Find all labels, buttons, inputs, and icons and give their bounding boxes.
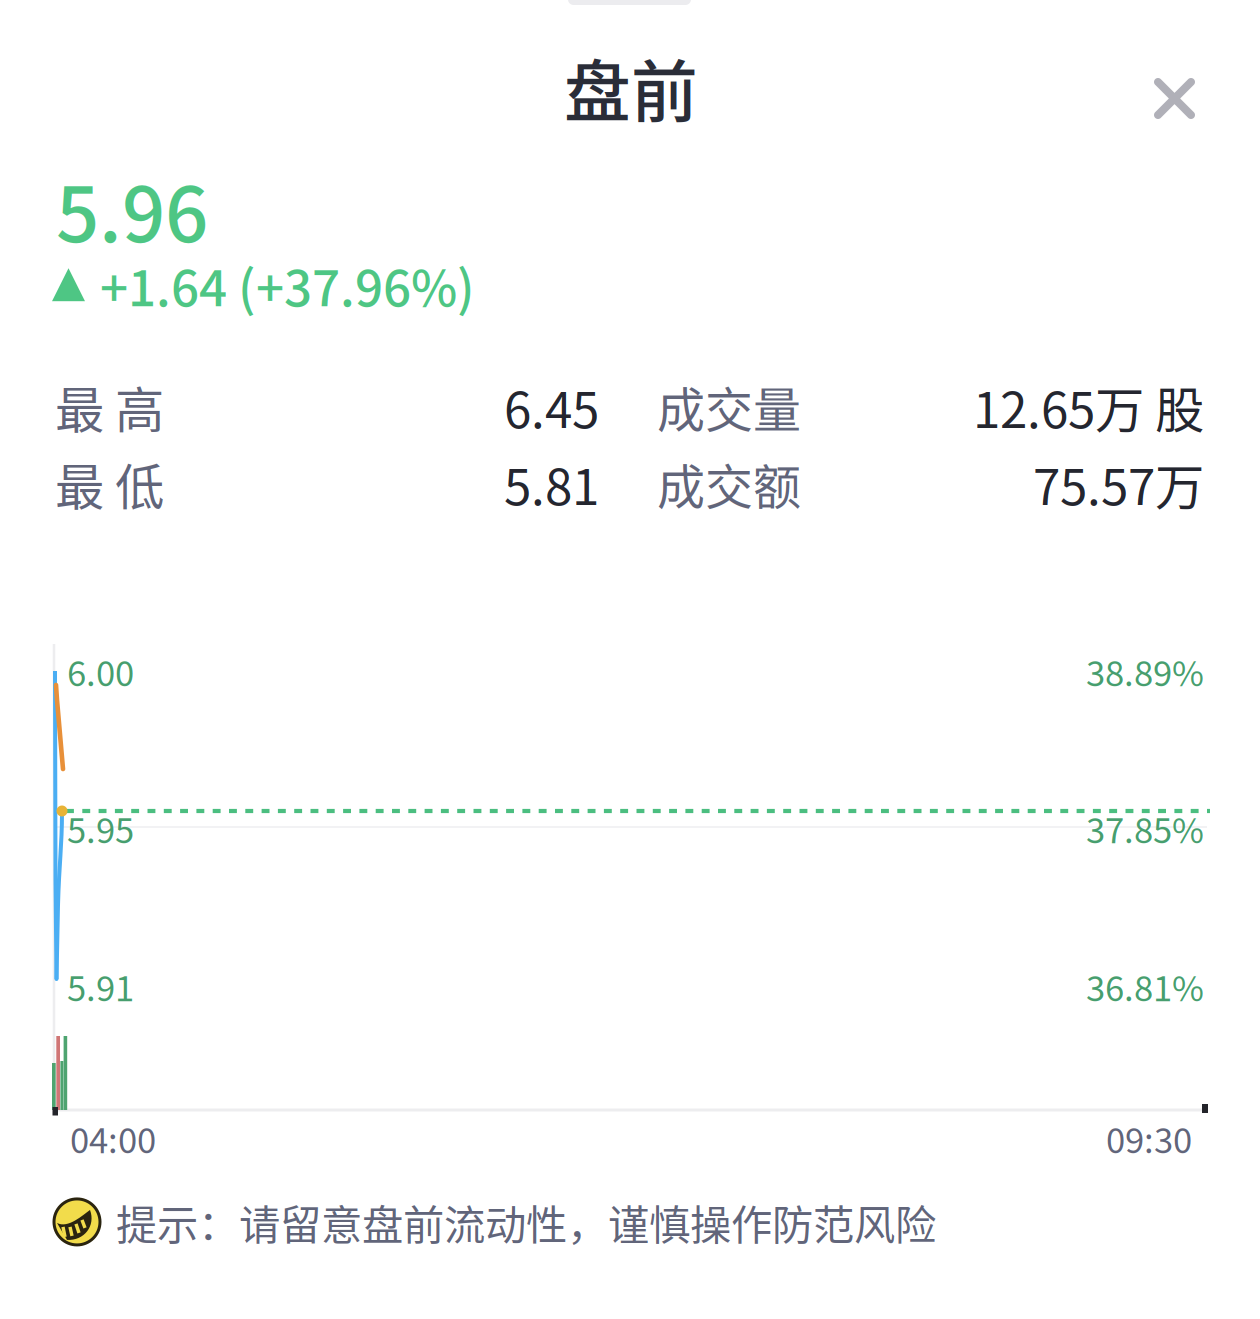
staticText: 6.00 bbox=[67, 646, 134, 696]
staticText: 38.89% bbox=[1086, 646, 1204, 696]
button[interactable]: Close bbox=[1154, 78, 1195, 119]
staticText: 5.96 bbox=[56, 154, 208, 264]
staticText: 36.81% bbox=[1086, 961, 1204, 1011]
staticText: +1.64 (+37.96%) bbox=[100, 249, 475, 320]
staticText: 5.81 bbox=[504, 448, 599, 519]
staticText: 12.65万 股 bbox=[973, 371, 1204, 442]
staticText: 5.91 bbox=[67, 961, 134, 1011]
staticText: 09:30 bbox=[1106, 1113, 1192, 1163]
staticText: 成交量 bbox=[657, 372, 801, 441]
staticText: 75.57万 bbox=[1033, 448, 1204, 519]
staticText: 最 低 bbox=[55, 448, 164, 519]
staticText: 04:00 bbox=[70, 1113, 156, 1163]
staticText: 最 高 bbox=[55, 371, 164, 442]
staticText: 盘前 bbox=[564, 39, 698, 135]
staticText: 提示：请留意盘前流动性，谨慎操作防范风险 bbox=[116, 1192, 936, 1252]
staticText: 5.95 bbox=[67, 803, 134, 853]
staticText: 37.85% bbox=[1086, 803, 1204, 853]
staticText: 6.45 bbox=[504, 371, 599, 442]
staticText: 成交额 bbox=[657, 449, 801, 518]
